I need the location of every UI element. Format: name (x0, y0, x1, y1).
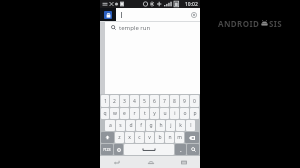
staticText: y (153, 110, 156, 117)
staticText: p (193, 110, 197, 117)
button[interactable]: j (166, 120, 175, 131)
staticText: z (118, 134, 121, 141)
button[interactable]: p (190, 108, 199, 119)
button[interactable] (116, 8, 188, 21)
button[interactable]: s (116, 120, 125, 131)
button[interactable]: l (186, 120, 195, 131)
staticText: e (123, 110, 126, 117)
staticText: f (140, 122, 142, 129)
button[interactable]: Navigate up (100, 8, 116, 21)
button[interactable]: 5 (140, 95, 149, 107)
staticText: h (159, 122, 163, 129)
button[interactable]: t (140, 108, 149, 119)
staticText: k (179, 122, 182, 129)
staticText: 0 (193, 98, 196, 105)
button[interactable]: 2 (110, 95, 119, 107)
staticText: c (138, 134, 141, 141)
staticText: o (183, 110, 187, 117)
button[interactable]: Symbols (101, 144, 113, 155)
button[interactable]: 7 (160, 95, 169, 107)
staticText: n (168, 134, 172, 141)
staticText: 9 (183, 98, 186, 105)
button[interactable]: d (126, 120, 135, 131)
button[interactable]: y (150, 108, 159, 119)
staticText: temple run (119, 24, 151, 32)
button[interactable]: u (160, 108, 169, 119)
staticText: s (119, 122, 122, 129)
staticText: r (133, 110, 136, 117)
staticText: q (103, 110, 107, 117)
button[interactable]: h (156, 120, 165, 131)
staticText: w (113, 110, 117, 117)
staticText: 6 (153, 98, 156, 105)
staticText: 1 (104, 98, 107, 105)
staticText: d (129, 122, 133, 129)
staticText: m (177, 134, 182, 141)
button[interactable]: f (136, 120, 145, 131)
button[interactable]: 4 (130, 95, 139, 107)
button[interactable]: 6 (150, 95, 159, 107)
button[interactable]: i (170, 108, 179, 119)
staticText: . (180, 146, 182, 154)
button[interactable]: Search (187, 144, 199, 155)
button[interactable]: a (105, 120, 115, 131)
button[interactable]: Period (175, 144, 186, 155)
staticText: b (158, 134, 162, 141)
staticText: SIS (269, 18, 283, 29)
staticText: v (148, 134, 151, 141)
staticText: l (190, 122, 192, 129)
staticText: j (170, 122, 172, 129)
staticText: 3 (123, 98, 126, 105)
button[interactable]: o (180, 108, 189, 119)
button[interactable]: 8 (170, 95, 179, 107)
staticText: 5 (143, 98, 146, 105)
staticText: i (174, 110, 176, 117)
button[interactable]: x (125, 132, 134, 143)
button[interactable]: e (120, 108, 129, 119)
staticText: 7 (163, 98, 166, 105)
button[interactable]: 3 (120, 95, 129, 107)
button[interactable]: Backspace (185, 132, 199, 143)
button[interactable]: Space (124, 144, 174, 155)
staticText: 10:02 (185, 1, 198, 8)
button[interactable]: q (101, 108, 109, 119)
button[interactable]: temple run (105, 22, 200, 33)
staticText: x (128, 134, 131, 141)
button[interactable]: Home (134, 156, 167, 168)
button[interactable]: r (130, 108, 139, 119)
button[interactable]: Shift (101, 132, 114, 143)
staticText: 4 (133, 98, 136, 105)
staticText: g (149, 122, 153, 129)
button[interactable]: g (146, 120, 155, 131)
button[interactable]: b (155, 132, 164, 143)
button[interactable]: 0 (190, 95, 199, 107)
button[interactable]: k (176, 120, 185, 131)
button[interactable]: Back (100, 156, 134, 168)
button[interactable]: Voice search (188, 8, 200, 21)
staticText: t (144, 110, 146, 117)
staticText: ?123 (103, 147, 111, 152)
staticText: 8 (173, 98, 176, 105)
button[interactable]: 9 (180, 95, 189, 107)
button[interactable]: Recent apps (167, 156, 200, 168)
staticText: ANDROID (218, 18, 260, 29)
button[interactable]: v (145, 132, 154, 143)
button[interactable]: n (165, 132, 174, 143)
button[interactable]: 1 (101, 95, 109, 107)
button[interactable]: z (115, 132, 124, 143)
button[interactable]: m (175, 132, 184, 143)
button[interactable]: Emoji (114, 144, 123, 155)
staticText: u (163, 110, 167, 117)
button[interactable]: w (110, 108, 119, 119)
button[interactable]: c (135, 132, 144, 143)
staticText: a (109, 122, 112, 129)
staticText: 2 (113, 98, 116, 105)
